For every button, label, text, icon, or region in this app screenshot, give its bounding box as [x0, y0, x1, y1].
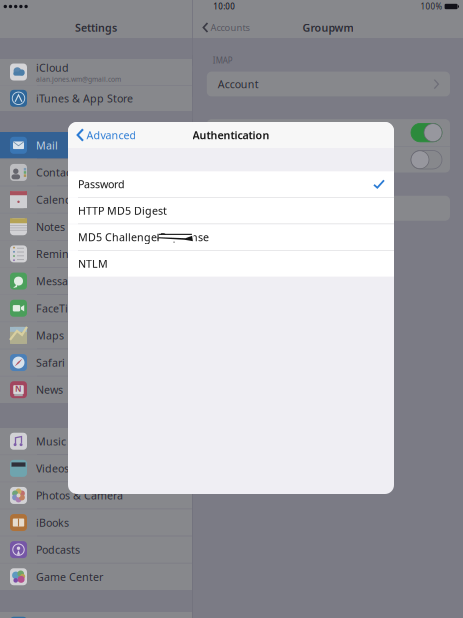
staticText: Calendar	[36, 192, 82, 207]
staticText: Authentication	[192, 128, 269, 142]
button[interactable]: Password	[68, 171, 394, 197]
staticText: Contacts	[36, 165, 80, 180]
button[interactable]: Videos	[0, 455, 192, 482]
staticText: Accounts	[210, 21, 249, 34]
staticText: Settings	[75, 20, 117, 35]
staticText: Game Center	[36, 570, 103, 584]
staticText: HTTP MD5 Digest	[78, 204, 167, 218]
button[interactable]: iBooks	[0, 509, 192, 536]
button[interactable]: iTunes & App Store	[0, 86, 192, 111]
staticText: Messages	[36, 274, 86, 288]
staticText: N	[15, 383, 22, 394]
staticText: iBooks	[36, 515, 69, 530]
staticText: Password	[78, 177, 125, 191]
button[interactable]: iCloud	[0, 59, 192, 85]
staticText: Notes	[36, 220, 65, 234]
button[interactable]: MD5 Challenge-Response	[68, 224, 394, 250]
button[interactable]	[0, 612, 192, 618]
button[interactable]: Music	[0, 428, 192, 454]
button[interactable]: Messages	[0, 268, 192, 294]
button[interactable]: HTTP MD5 Digest	[68, 198, 394, 224]
staticText: Photos & Camera	[36, 488, 123, 503]
staticText: 100%	[421, 1, 443, 12]
button[interactable]: Accounts	[193, 19, 249, 36]
button[interactable]: NTLM	[68, 251, 394, 277]
staticText: Music	[36, 434, 66, 448]
staticText: Advanced	[86, 128, 136, 142]
staticText: Podcasts	[36, 543, 80, 557]
button[interactable]	[207, 147, 450, 173]
staticText: Groupwm	[302, 20, 353, 35]
staticText: IMAP	[213, 55, 233, 66]
staticText: FaceTime	[36, 301, 84, 315]
button[interactable]: Safari	[0, 349, 192, 376]
button[interactable]: Photos & Camera	[0, 482, 192, 509]
staticText: alan.jones.wm@gmail.com	[36, 75, 121, 84]
staticText: News	[36, 383, 63, 397]
button[interactable]: Contacts	[0, 159, 192, 186]
staticText: Mail	[36, 138, 58, 152]
staticText: Maps	[36, 328, 64, 342]
staticText: Videos	[36, 461, 69, 475]
button[interactable]: Advanced	[68, 123, 136, 147]
button[interactable]: Maps	[0, 322, 192, 349]
staticText: NTLM	[78, 257, 108, 271]
button[interactable]: FaceTime	[0, 295, 192, 322]
staticText: Account	[218, 77, 259, 91]
button[interactable]: Calendar	[0, 186, 192, 213]
button[interactable]	[207, 119, 450, 146]
button[interactable]: Game Center	[0, 563, 192, 590]
staticText: iTunes & App Store	[36, 91, 133, 105]
staticText: 10:00	[213, 1, 235, 12]
button[interactable]: Podcasts	[0, 536, 192, 563]
staticText: iCloud	[36, 60, 69, 75]
button[interactable]: N	[0, 376, 192, 403]
button[interactable]: Notes	[0, 213, 192, 240]
staticText: MD5 Challenge-Response	[78, 230, 209, 244]
button[interactable]: Mail	[0, 132, 192, 159]
staticText: Safari	[36, 355, 65, 370]
button[interactable]: Account	[193, 72, 463, 97]
staticText: Reminders	[36, 247, 91, 261]
button[interactable]: Reminders	[0, 241, 192, 267]
